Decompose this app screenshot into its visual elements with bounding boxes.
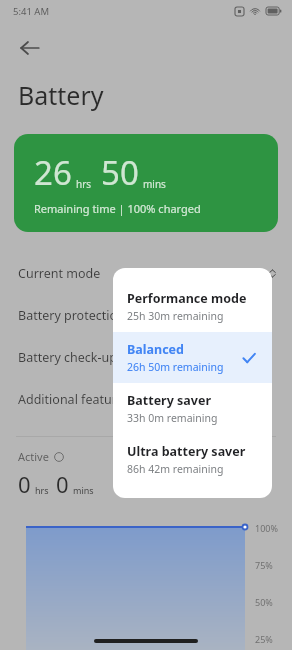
staticText: Battery saver [127, 392, 212, 409]
staticText: 86h 42m remaining [127, 462, 224, 476]
button[interactable]: Additional features [0, 378, 292, 420]
button[interactable]: Current mode [0, 252, 292, 294]
staticText: Battery check-up [18, 349, 117, 366]
staticText: Current mode [18, 265, 101, 282]
staticText: mins [143, 177, 166, 191]
staticText: 26h 50m remaining [127, 360, 224, 374]
staticText: 50 [101, 150, 139, 195]
staticText: 25h 30m remaining [127, 309, 224, 323]
staticText: hrs [76, 177, 92, 191]
staticText: 5:41 AM [13, 5, 50, 18]
button[interactable]: Battery saver [113, 383, 272, 434]
staticText: Balanced [127, 341, 184, 358]
staticText: Remaining time | 100% charged [34, 201, 201, 216]
staticText: Ultra battery saver [127, 443, 246, 460]
button[interactable]: Performance mode [113, 281, 272, 332]
staticText: Battery [18, 78, 104, 112]
staticText: 25% [255, 633, 273, 645]
staticText: 33h 0m remaining [127, 411, 218, 425]
button[interactable]: Battery check-up [0, 336, 292, 378]
staticText: Active [18, 449, 49, 464]
staticText: Performance mode [127, 290, 247, 307]
staticText: Balanced [214, 265, 264, 281]
button[interactable]: Ultra battery saver [113, 434, 272, 485]
staticText: 50% [255, 596, 273, 608]
staticText: 0 [18, 469, 31, 499]
button[interactable]: Battery protection [0, 294, 292, 336]
button[interactable]: 26 [14, 134, 278, 232]
staticText: 100% [255, 522, 278, 534]
staticText: mins [73, 484, 94, 496]
staticText: hrs [35, 484, 49, 496]
staticText: 26 [34, 150, 72, 195]
staticText: Battery protection [18, 307, 125, 324]
button[interactable]: Back [12, 30, 48, 66]
staticText: Additional features [18, 391, 130, 408]
staticText: 0 [56, 469, 69, 499]
button[interactable]: Balanced [113, 332, 272, 383]
staticText: 75% [255, 559, 273, 571]
